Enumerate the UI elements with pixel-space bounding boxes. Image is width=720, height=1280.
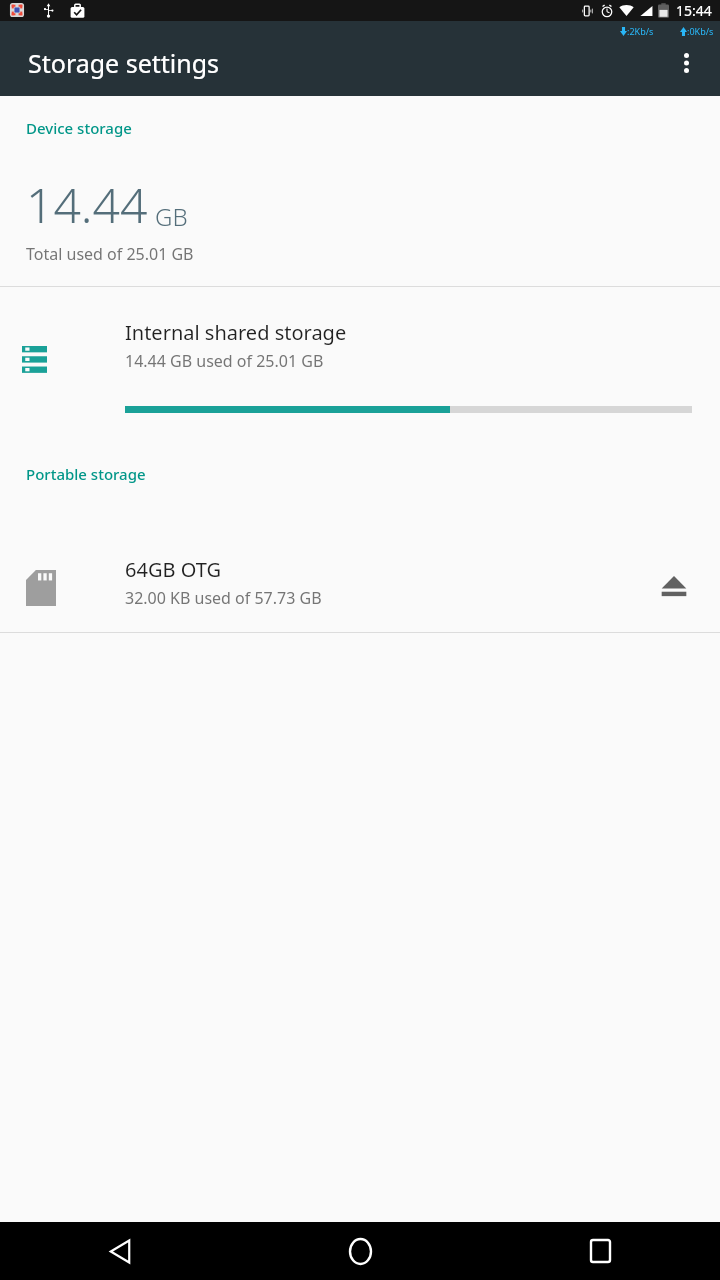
staticText: Storage settings bbox=[28, 46, 220, 80]
staticText: :0Kb/s bbox=[687, 25, 714, 37]
staticText: 64GB OTG bbox=[125, 556, 221, 583]
staticText: Total used of 25.01 GB bbox=[26, 243, 194, 265]
staticText: GB bbox=[155, 200, 188, 233]
button[interactable]: Recent apps bbox=[480, 1222, 720, 1280]
staticText: Internal shared storage bbox=[125, 319, 347, 346]
button[interactable]: Back bbox=[0, 1222, 240, 1280]
staticText: 15:44 bbox=[676, 1, 712, 20]
button[interactable] bbox=[0, 540, 720, 632]
button[interactable]: Home bbox=[240, 1222, 480, 1280]
staticText: Device storage bbox=[26, 118, 132, 138]
staticText: 32.00 KB used of 57.73 GB bbox=[125, 587, 322, 609]
staticText: 14.44 bbox=[26, 172, 148, 237]
staticText: :2Kb/s bbox=[627, 25, 654, 37]
button[interactable]: Eject bbox=[646, 558, 702, 614]
button[interactable]: Internal shared storage bbox=[0, 287, 720, 452]
staticText: 14.44 GB used of 25.01 GB bbox=[125, 350, 324, 372]
button[interactable]: More options bbox=[662, 39, 710, 87]
staticText: Portable storage bbox=[26, 464, 146, 484]
